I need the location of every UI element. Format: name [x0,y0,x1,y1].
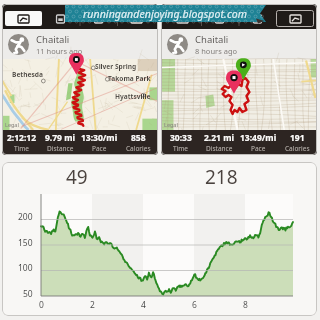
button[interactable]: Friends [42,11,79,26]
staticText: 11 hours ago [36,46,83,56]
staticText: Pace [251,144,266,153]
staticText: Chaitali [36,33,70,46]
staticText: Time [14,144,30,153]
staticText: Legal [5,121,19,128]
staticText: Pace [92,144,107,153]
staticText: 8 [243,299,248,311]
button[interactable]: Challenges [79,11,117,26]
staticText: Time [173,144,189,153]
button[interactable]: Activity [164,11,201,26]
staticText: Chaitali [195,33,229,46]
staticText: 30:33 [170,132,192,144]
staticText: runningandenjoying.blogspot.com [83,7,248,21]
button[interactable]: Friends [201,11,238,26]
button[interactable]: 49 [2,162,317,316]
staticText: 150 [18,237,33,249]
staticText: Calories [285,144,310,153]
staticText: 13:49/mi [240,132,277,144]
staticText: 858 [131,132,146,144]
button[interactable]: Records [276,11,314,26]
staticText: Distance [206,144,233,153]
staticText: 218 [205,164,238,190]
staticText: 8 hours ago [195,46,238,56]
button[interactable]: Activity [161,4,317,155]
button[interactable]: Challenges [238,11,276,26]
staticText: Hyattsville [115,92,151,101]
staticText: Silver Spring [95,62,137,71]
staticText: Takoma Park [108,74,151,83]
staticText: Distance [47,144,74,153]
staticText: 4 [141,299,146,311]
staticText: Calories [126,144,151,153]
staticText: 0 [39,299,44,311]
staticText: 2 [90,299,95,311]
staticText: 191 [290,132,305,144]
staticText: 100 [18,262,33,274]
staticText: 49 [66,164,88,190]
staticText: 9.79 mi [45,132,76,144]
button[interactable]: Records [117,11,155,26]
staticText: Bethesda [12,70,43,79]
staticText: 6 [192,299,197,311]
staticText: 13:30/mi [81,132,118,144]
staticText: Legal [164,121,178,128]
staticText: 50 [23,288,33,300]
staticText: 2:12:12 [7,132,37,144]
button[interactable]: Activity [5,11,42,26]
staticText: 2.21 mi [204,132,235,144]
button[interactable]: Activity [2,4,158,155]
staticText: 200 [18,211,33,223]
